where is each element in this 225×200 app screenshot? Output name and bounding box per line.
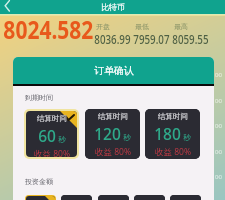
staticText: 秒 (123, 133, 131, 142)
button[interactable]: Back (0, 0, 13, 13)
button[interactable] (98, 195, 129, 200)
staticText: 00 (215, 148, 222, 156)
staticText: 00 (215, 71, 222, 79)
staticText: 订单确认 (94, 64, 134, 77)
staticText: 00 (215, 122, 222, 130)
staticText: 比特币 (101, 2, 125, 12)
staticText: 收益 80% (95, 146, 131, 158)
staticText: 00 (215, 173, 222, 181)
staticText: 最低 (135, 22, 149, 31)
staticText: 60 (38, 125, 56, 146)
staticText: 8059.55 (172, 31, 209, 48)
button[interactable] (170, 195, 201, 200)
staticText: 开盘 (96, 22, 110, 31)
staticText: 180 (154, 123, 181, 144)
button[interactable]: 结算时间 (85, 109, 140, 159)
staticText: 7959.07 (133, 31, 170, 48)
staticText: 结算时间 (37, 114, 67, 123)
button[interactable] (134, 195, 165, 200)
staticText: 结算时间 (158, 112, 188, 121)
staticText: 秒 (183, 133, 191, 142)
staticText: 结算时间 (98, 112, 128, 121)
staticText: 投资金额 (25, 177, 53, 186)
staticText: 8036.99 (94, 31, 131, 48)
staticText: 收益 80% (34, 148, 70, 157)
staticText: 收益 80% (155, 146, 191, 158)
staticText: 00 (215, 97, 222, 105)
button[interactable] (26, 196, 55, 200)
staticText: 8024.582 (3, 12, 94, 46)
staticText: 到期时间 (25, 93, 53, 102)
staticText: 秒 (58, 135, 66, 144)
staticText: 最高 (174, 22, 188, 31)
button[interactable] (61, 195, 92, 200)
staticText: 120 (94, 123, 121, 144)
button[interactable]: 结算时间 (26, 111, 77, 157)
button[interactable]: 结算时间 (145, 109, 200, 159)
